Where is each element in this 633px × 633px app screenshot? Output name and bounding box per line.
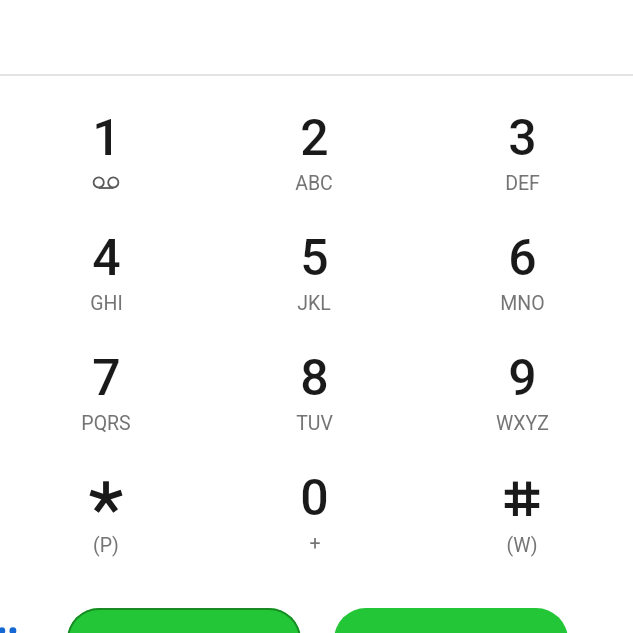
button[interactable]: 0 xyxy=(210,469,418,589)
staticText: TUV xyxy=(296,412,333,435)
button[interactable]: 6 xyxy=(418,229,626,349)
button[interactable]: 5 xyxy=(210,229,418,349)
staticText: 3 xyxy=(508,109,537,168)
button[interactable]: Dialpad xyxy=(0,606,34,633)
button[interactable]: Video call xyxy=(334,608,568,633)
staticText: (P) xyxy=(93,534,119,557)
staticText: 0 xyxy=(300,469,329,528)
staticText: (W) xyxy=(506,534,538,557)
button[interactable]: (P) xyxy=(2,469,210,589)
button[interactable]: 3 xyxy=(418,109,626,229)
staticText: 4 xyxy=(92,229,121,288)
staticText: 1 xyxy=(92,109,121,168)
button[interactable]: 7 xyxy=(2,349,210,469)
staticText: 8 xyxy=(300,349,329,408)
staticText: 9 xyxy=(508,349,537,408)
button[interactable]: Call xyxy=(67,608,301,633)
staticText: DEF xyxy=(505,172,540,195)
button[interactable]: 9 xyxy=(418,349,626,469)
staticText: JKL xyxy=(297,292,331,315)
button[interactable]: 2 xyxy=(210,109,418,229)
button[interactable]: 8 xyxy=(210,349,418,469)
staticText: + xyxy=(309,532,321,555)
button[interactable]: (W) xyxy=(418,469,626,589)
staticText: ABC xyxy=(295,172,333,195)
staticText: 2 xyxy=(300,109,329,168)
staticText: 6 xyxy=(508,229,537,288)
button[interactable]: 4 xyxy=(2,229,210,349)
staticText: 5 xyxy=(300,229,329,288)
staticText: PQRS xyxy=(81,412,131,435)
staticText: WXYZ xyxy=(496,412,549,435)
staticText: MNO xyxy=(500,292,545,315)
staticText: GHI xyxy=(90,292,123,315)
button[interactable]: 1 xyxy=(2,109,210,229)
staticText: 7 xyxy=(92,349,121,408)
